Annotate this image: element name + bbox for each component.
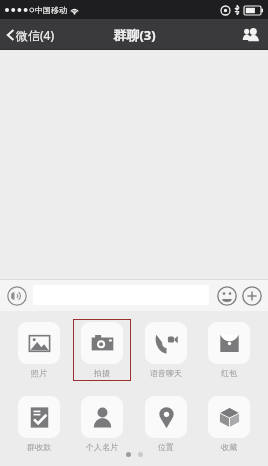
- staticText: 群聊(3): [113, 26, 156, 44]
- staticText: 中国移动: [35, 5, 67, 15]
- staticText: 照片: [31, 368, 47, 378]
- button[interactable]: Chat members: [234, 19, 268, 50]
- button[interactable]: Emoji: [216, 285, 237, 306]
- button[interactable]: 收藏: [200, 393, 258, 452]
- button[interactable]: 个人名片: [73, 393, 131, 452]
- staticText: 群收款: [27, 442, 51, 452]
- staticText: 红包: [221, 368, 237, 378]
- staticText: 拍摄: [94, 368, 110, 378]
- staticText: 个人名片: [86, 442, 118, 452]
- staticText: 语音聊天: [150, 368, 182, 378]
- button[interactable]: Voice message: [6, 285, 27, 306]
- button[interactable]: 微信(4): [0, 19, 62, 50]
- staticText: 收藏: [221, 442, 237, 452]
- button[interactable]: 拍摄: [74, 320, 130, 380]
- button[interactable]: 红包: [200, 319, 258, 378]
- button[interactable]: More options: [241, 285, 262, 306]
- button[interactable]: 语音聊天: [137, 319, 195, 378]
- staticText: 微信(4): [16, 27, 55, 43]
- button[interactable]: 位置: [137, 393, 195, 452]
- button[interactable]: 群收款: [10, 393, 68, 452]
- button[interactable]: 照片: [10, 319, 68, 378]
- staticText: 位置: [158, 442, 174, 452]
